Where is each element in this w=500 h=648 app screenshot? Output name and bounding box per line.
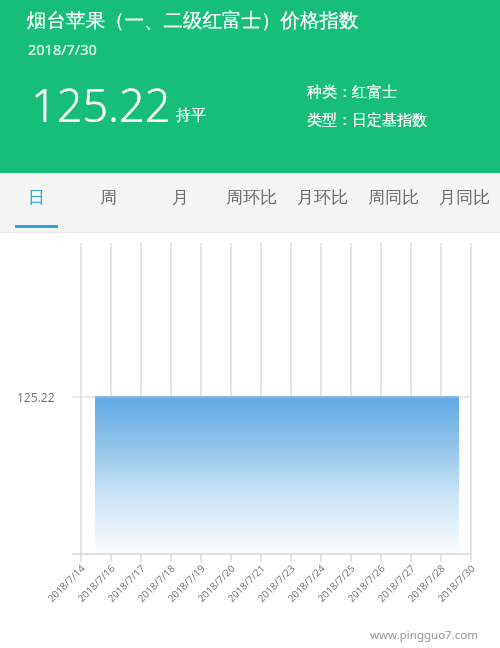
button[interactable]: 日 (0, 173, 72, 233)
staticText: 类型：日定基指数 (307, 111, 427, 130)
staticText: 周同比 (368, 187, 419, 208)
staticText: 烟台苹果（一、二级红富士）价格指数 (27, 8, 359, 33)
staticText: www.pingguo7.com (370, 627, 478, 643)
staticText: 2018/7/30 (28, 39, 97, 59)
button[interactable]: 月环比 (287, 173, 358, 233)
staticText: 持平 (176, 106, 206, 125)
button[interactable]: 周 (72, 173, 144, 233)
button[interactable]: 月 (144, 173, 216, 233)
staticText: 125.22 (31, 74, 171, 135)
staticText: 种类：红富士 (307, 83, 397, 102)
staticText: 月同比 (439, 187, 490, 208)
button[interactable]: 月同比 (429, 173, 500, 233)
button[interactable]: 周同比 (358, 173, 429, 233)
staticText: 月环比 (297, 187, 348, 208)
staticText: 周环比 (226, 187, 277, 208)
staticText: 周 (100, 187, 117, 208)
button[interactable]: 周环比 (216, 173, 287, 233)
staticText: 月 (172, 187, 189, 208)
staticText: 日 (28, 187, 45, 208)
